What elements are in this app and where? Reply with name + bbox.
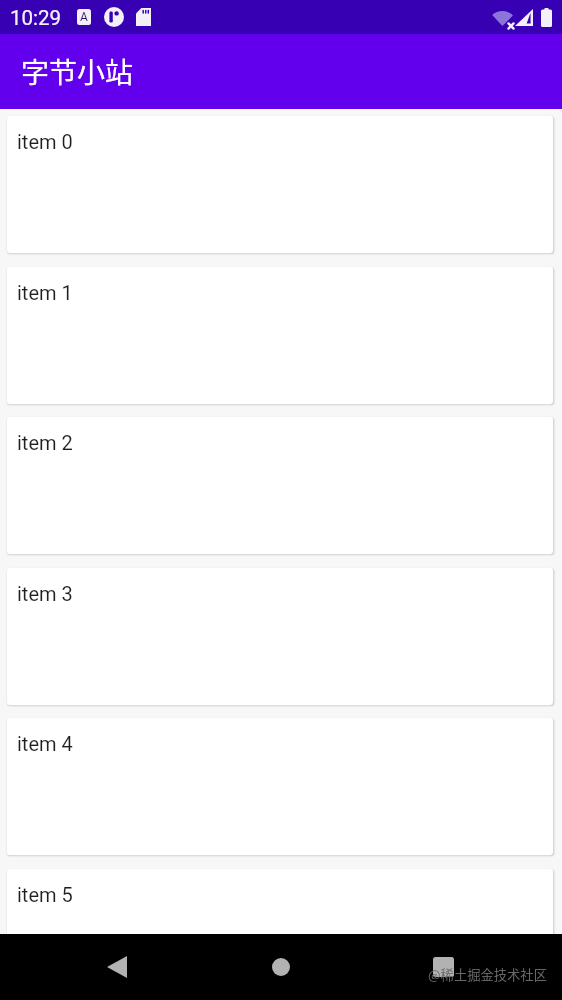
- staticText: A: [80, 10, 88, 24]
- button[interactable]: item 2: [7, 417, 553, 554]
- button[interactable]: Home: [258, 944, 304, 990]
- button[interactable]: item 4: [7, 718, 553, 855]
- button[interactable]: Recent apps: [420, 944, 466, 990]
- staticText: 10:29: [10, 6, 62, 30]
- button[interactable]: item 3: [7, 568, 553, 705]
- staticText: item 0: [17, 130, 73, 153]
- button[interactable]: item 0: [7, 116, 553, 253]
- staticText: item 4: [17, 732, 73, 755]
- staticText: 字节小站: [21, 51, 134, 92]
- staticText: item 1: [17, 281, 73, 304]
- staticText: item 5: [17, 883, 73, 906]
- staticText: item 3: [17, 582, 73, 605]
- staticText: @稀土掘金技术社区: [428, 965, 547, 984]
- button[interactable]: item 1: [7, 267, 553, 404]
- button[interactable]: item 5: [7, 869, 553, 934]
- staticText: item 2: [17, 431, 73, 454]
- button[interactable]: Back: [94, 944, 140, 990]
